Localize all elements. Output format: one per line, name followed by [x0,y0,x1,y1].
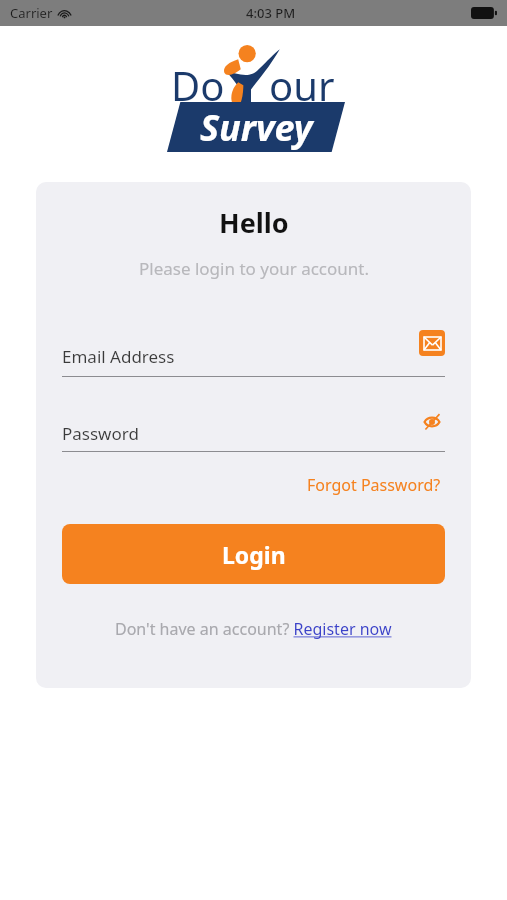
button[interactable]: Forgot Password? [303,470,445,500]
staticText: Login [222,539,286,570]
staticText: Forgot Password? [307,474,441,496]
button[interactable]: Login [62,524,445,584]
button[interactable]: Don't have an account? Register now [111,614,396,644]
staticText: Do [171,58,225,112]
staticText: Don't have an account? Register now [115,618,392,640]
button[interactable]: Show password [419,409,445,435]
staticText: Survey [200,103,313,152]
staticText: 4:03 PM [246,4,296,22]
staticText: Hello [219,204,289,241]
staticText: Email Address [62,345,175,368]
staticText: Carrier [10,4,53,22]
staticText: our [269,58,335,112]
staticText: Please login to your account. [139,257,369,280]
button[interactable]: Email [419,330,445,356]
staticText: Password [62,422,139,445]
